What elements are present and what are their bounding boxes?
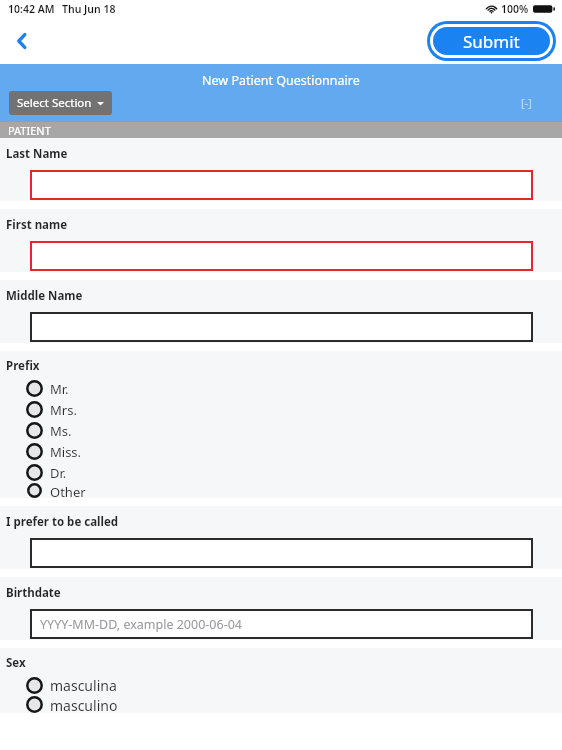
button[interactable] — [30, 538, 533, 568]
staticText: I prefer to be called — [6, 514, 119, 530]
staticText: Dr. — [50, 464, 67, 482]
staticText: Prefix — [6, 358, 40, 374]
button[interactable]: masculino — [0, 696, 562, 713]
button[interactable]: Mr. — [0, 378, 562, 399]
staticText: Thu Jun 18 — [62, 2, 116, 16]
button[interactable]: Collapse section — [516, 92, 536, 112]
button[interactable] — [30, 170, 533, 200]
button[interactable]: Dr. — [0, 462, 562, 483]
staticText: Middle Name — [6, 288, 83, 304]
staticText: Miss. — [50, 443, 82, 461]
staticText: PATIENT — [8, 123, 51, 138]
staticText: Select Section — [17, 95, 92, 111]
staticText: New Patient Questionnaire — [202, 72, 360, 89]
button[interactable]: masculina — [0, 675, 562, 696]
staticText: YYYY-MM-DD, example 2000-06-04 — [40, 616, 242, 633]
staticText: masculino — [50, 696, 118, 713]
staticText: Mrs. — [50, 401, 77, 419]
staticText: Ms. — [50, 422, 72, 440]
staticText: Sex — [6, 655, 26, 671]
button[interactable] — [30, 241, 533, 271]
staticText: Mr. — [50, 380, 69, 398]
button[interactable]: Mrs. — [0, 399, 562, 420]
staticText: Last Name — [6, 146, 68, 162]
staticText: [-] — [521, 95, 532, 110]
button[interactable]: Other — [0, 483, 562, 498]
staticText: 10:42 AM — [8, 2, 55, 16]
staticText: First name — [6, 217, 68, 233]
staticText: Other — [50, 483, 86, 498]
staticText: masculina — [50, 676, 117, 695]
staticText: Birthdate — [6, 585, 61, 601]
button[interactable]: YYYY-MM-DD, example 2000-06-04 — [30, 609, 533, 639]
button[interactable] — [30, 312, 533, 342]
button[interactable]: Select Section — [9, 91, 112, 115]
button[interactable]: Submit — [433, 27, 550, 55]
button[interactable]: Miss. — [0, 441, 562, 462]
button[interactable]: Ms. — [0, 420, 562, 441]
staticText: Submit — [463, 30, 520, 53]
staticText: 100% — [501, 2, 529, 16]
button[interactable]: Back — [4, 23, 40, 59]
